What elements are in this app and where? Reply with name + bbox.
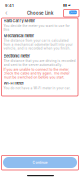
staticText: The distance from your car is calculated… — [3, 39, 72, 50]
staticText: Hard Carry Meter — [3, 19, 35, 23]
button[interactable]: Done — [69, 11, 77, 14]
staticText: Choose Link — [27, 10, 53, 16]
button[interactable]: Back — [4, 10, 9, 16]
staticText: Continue — [32, 160, 47, 165]
staticText: If you are unable to connect to the mete… — [3, 67, 69, 79]
staticText: ‹ — [5, 9, 8, 17]
staticText: ▮▮ ▰ — [63, 3, 71, 7]
staticText: Done — [69, 11, 77, 14]
staticText: The distance that you are driving is rec… — [3, 59, 75, 67]
staticText: 9:41 — [5, 3, 14, 8]
staticText: You do not have a Wi-Fi meter in your ca… — [3, 86, 70, 90]
staticText: Wi-Fi meter — [3, 81, 24, 85]
staticText: Electronic meter — [3, 54, 30, 58]
staticText: Mechanical meter — [3, 33, 34, 38]
button[interactable]: Continue — [3, 157, 77, 168]
staticText: You decide the meter you want to use for… — [3, 24, 69, 32]
